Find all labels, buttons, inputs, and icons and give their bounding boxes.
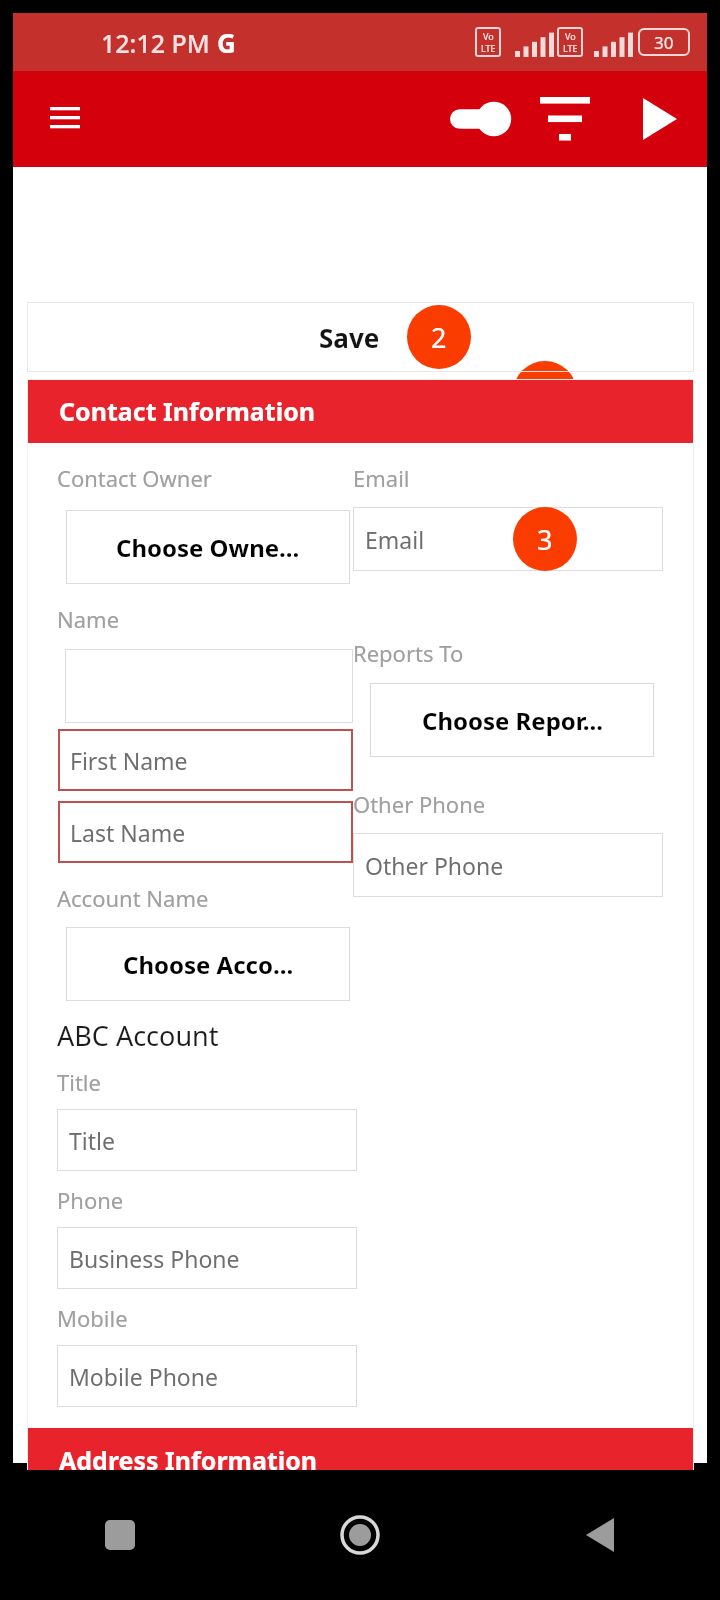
button[interactable]: Business Phone [57, 1227, 357, 1289]
button[interactable]: Contact Information [27, 379, 694, 443]
staticText: First Name [70, 745, 188, 776]
button[interactable]: Address Information [27, 1428, 694, 1492]
staticText: Business Phone [69, 1243, 240, 1274]
button[interactable]: Play [625, 71, 695, 167]
button[interactable]: 1 [513, 361, 682, 425]
button[interactable]: Choose Owne... [66, 510, 350, 584]
staticText: Phone [57, 1185, 124, 1215]
staticText: ONLINE [585, 376, 682, 411]
staticText: Last Name [70, 817, 186, 848]
button[interactable]: Save [27, 302, 694, 372]
staticText: 12:12 PM [101, 26, 210, 60]
staticText: Vo [483, 30, 494, 42]
button[interactable]: Mobile Phone [57, 1345, 357, 1407]
button[interactable]: Title [57, 1109, 357, 1171]
staticText: Contact Owner [57, 463, 212, 493]
staticText: Other Address [353, 1506, 503, 1536]
staticText: Other Phone [353, 789, 486, 819]
button[interactable] [65, 649, 353, 723]
staticText: Mobile Phone [69, 1361, 218, 1392]
staticText: Account Name [57, 883, 209, 913]
staticText: 3 [537, 521, 553, 558]
button[interactable]: Home [240, 1470, 480, 1600]
button[interactable]: Choose Acco... [66, 927, 350, 1001]
staticText: Save [319, 320, 380, 355]
staticText: Reports To [353, 638, 464, 668]
staticText: 2 [431, 319, 447, 356]
staticText: Vo [565, 30, 576, 42]
staticText: G [217, 25, 236, 60]
button[interactable]: Back [480, 1470, 720, 1600]
staticText: Mailing Address [57, 1506, 223, 1536]
button[interactable]: First Name [58, 729, 353, 791]
staticText: Choose Owne... [116, 531, 300, 564]
staticText: LTE [481, 42, 496, 54]
staticText: Email [365, 524, 425, 555]
staticText: 30 [654, 31, 674, 54]
button[interactable]: Menu [34, 71, 96, 167]
button[interactable]: Toggle [443, 71, 517, 167]
staticText: Name [57, 604, 120, 634]
staticText: LTE [563, 42, 578, 54]
staticText: ABC Account [57, 1017, 219, 1054]
staticText: Title [57, 1067, 101, 1097]
staticText: 1 [537, 375, 553, 412]
button[interactable]: Last Name [58, 801, 353, 863]
button[interactable]: Other Phone [353, 833, 663, 897]
button[interactable]: Recents [0, 1470, 240, 1600]
staticText: Choose Repor... [422, 704, 603, 737]
button[interactable]: Filter [525, 71, 605, 167]
staticText: Choose Acco... [123, 948, 294, 981]
button[interactable]: Email [353, 507, 663, 571]
staticText: Address Information [59, 1443, 318, 1477]
staticText: Mobile [57, 1303, 128, 1333]
staticText: Title [69, 1125, 115, 1156]
staticText: Email [353, 463, 410, 493]
staticText: Other Phone [365, 850, 504, 881]
staticText: Contact Information [59, 394, 316, 428]
button[interactable]: Choose Repor... [370, 683, 654, 757]
